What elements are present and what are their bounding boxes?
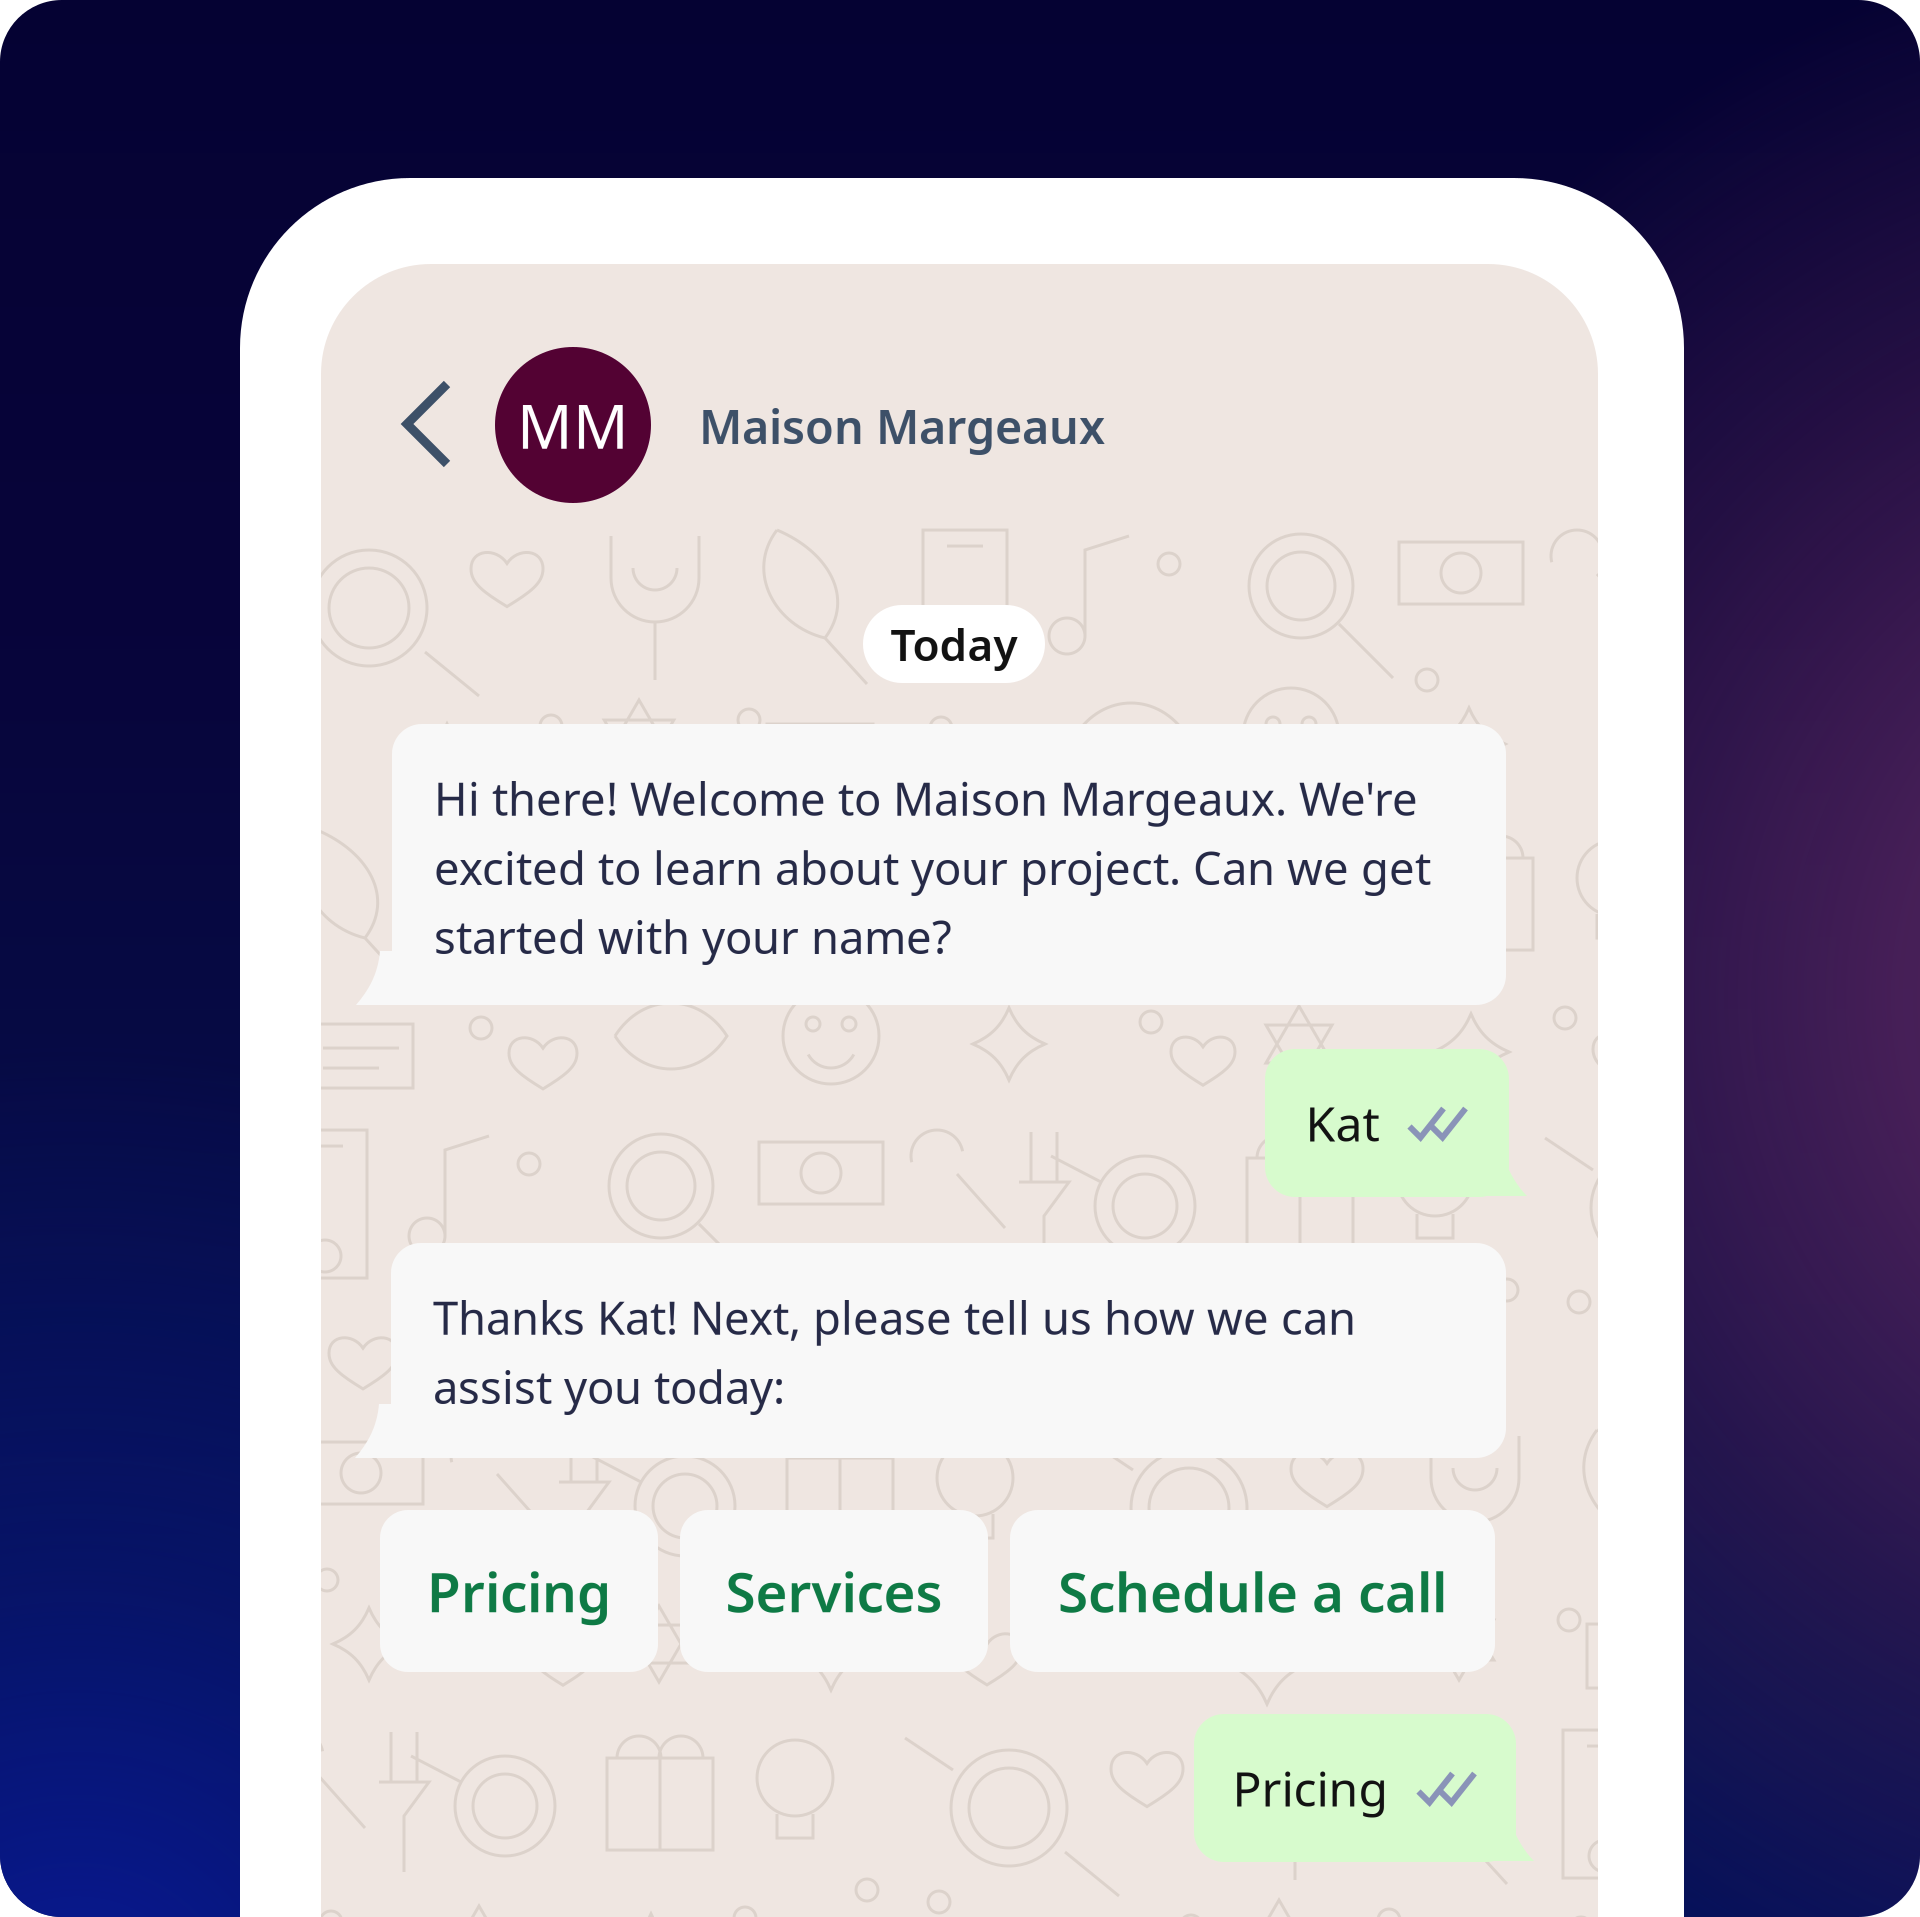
staticText: Thanks Kat! Next, please tell us how we … <box>433 1287 1356 1416</box>
staticText: Pricing <box>1232 1756 1388 1820</box>
staticText: MM <box>517 384 629 466</box>
staticText: Kat <box>1305 1091 1379 1155</box>
staticText: Schedule a call <box>1058 1555 1447 1627</box>
staticText: Today <box>890 615 1017 673</box>
staticText: Pricing <box>427 1555 611 1627</box>
button[interactable]: Pricing <box>380 1510 658 1672</box>
staticText: Services <box>725 1555 942 1627</box>
staticText: Maison Margeaux <box>699 395 1105 457</box>
staticText: Hi there! Welcome to Maison Margeaux. We… <box>434 768 1431 967</box>
button[interactable]: Back <box>379 365 489 483</box>
button[interactable]: Services <box>680 1510 988 1672</box>
button[interactable]: Schedule a call <box>1010 1510 1495 1672</box>
